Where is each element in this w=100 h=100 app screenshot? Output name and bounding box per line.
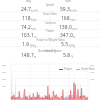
staticText: 138.0 (59, 24, 72, 31)
staticText: rpm (72, 27, 78, 31)
staticText: 100 (2, 84, 7, 87)
staticText: Normalized Power (38, 49, 62, 53)
staticText: 74.2 (21, 24, 31, 31)
button[interactable]: Speed (0, 3, 100, 12)
staticText: w (73, 35, 76, 39)
staticText: 347.0 (60, 32, 73, 39)
staticText: Avg (26, 0, 31, 3)
button[interactable]: Cadence (0, 21, 100, 30)
staticText: 103.1 (21, 32, 34, 39)
staticText: 300 (2, 70, 7, 73)
staticText: kJ/kg (30, 44, 37, 48)
staticText: 5.8 (63, 52, 71, 59)
staticText: 200 (2, 77, 7, 80)
staticText: rpm (31, 27, 37, 31)
staticText: Power to Weight Ratio (36, 38, 65, 42)
staticText: 100 (90, 77, 95, 80)
button[interactable]: Power (0, 29, 100, 38)
staticText: Heart Rate (43, 12, 57, 16)
staticText: 118 (22, 15, 31, 22)
staticText: w (34, 35, 37, 39)
staticText: km/h (31, 9, 38, 13)
staticText: 148.7 (21, 52, 34, 59)
staticText: Max (65, 0, 71, 3)
staticText: Heart Rate (81, 67, 95, 71)
staticText: 1.6 (22, 41, 30, 48)
staticText: 150 (90, 70, 95, 73)
staticText: 5.5 (61, 41, 69, 48)
staticText: 168 (61, 15, 70, 22)
staticText: 24.7 (21, 6, 31, 13)
staticText: Power (64, 67, 72, 71)
staticText: Speed (46, 3, 54, 7)
staticText: kJ/kg (69, 44, 76, 48)
staticText: 200 (90, 63, 95, 66)
staticText: 400 (2, 63, 7, 66)
staticText: bpm (70, 18, 76, 22)
staticText: bpm (31, 18, 37, 22)
staticText: Power (46, 29, 54, 33)
staticText: Standing (44, 49, 56, 53)
staticText: w (34, 55, 37, 59)
button[interactable]: Heart Rate (0, 12, 100, 21)
staticText: 59.3 (60, 6, 70, 13)
button[interactable]: Power to Weight Ratio (0, 38, 100, 47)
staticText: Cadence (45, 21, 56, 25)
staticText: % (71, 55, 74, 59)
staticText: km/h (70, 9, 77, 13)
